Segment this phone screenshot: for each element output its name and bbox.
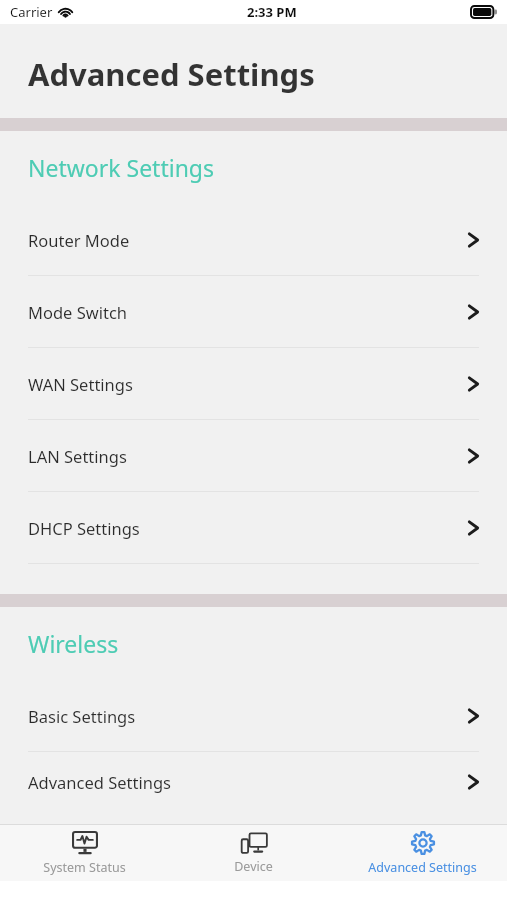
button[interactable]: Advanced Settings: [338, 825, 507, 881]
button[interactable]: Mode Switch: [0, 276, 507, 347]
staticText: Carrier: [10, 3, 53, 21]
other: System Status: [72, 831, 98, 855]
button[interactable]: LAN Settings: [0, 420, 507, 491]
button[interactable]: WAN Settings: [0, 348, 507, 419]
staticText: WAN Settings: [28, 373, 133, 395]
button[interactable]: Router Mode: [0, 204, 507, 275]
button[interactable]: DHCP Settings: [0, 492, 507, 563]
staticText: Advanced Settings: [28, 53, 315, 95]
staticText: Advanced Settings: [28, 771, 171, 793]
staticText: Advanced Settings: [368, 859, 477, 876]
button[interactable]: Device: [169, 825, 338, 881]
button[interactable]: System Status: [0, 825, 169, 881]
staticText: Device: [234, 858, 273, 875]
button[interactable]: Basic Settings: [0, 680, 507, 751]
staticText: Basic Settings: [28, 705, 136, 727]
staticText: DHCP Settings: [28, 517, 140, 539]
staticText: Mode Switch: [28, 301, 128, 323]
other: Device: [240, 832, 268, 854]
staticText: 2:33 PM: [247, 3, 297, 21]
staticText: LAN Settings: [28, 445, 127, 467]
staticText: Network Settings: [28, 152, 215, 183]
other: Advanced Settings: [411, 831, 435, 855]
staticText: Wireless: [28, 628, 119, 659]
button[interactable]: Advanced Settings: [0, 752, 507, 812]
staticText: System Status: [43, 859, 126, 876]
staticText: Router Mode: [28, 229, 130, 251]
